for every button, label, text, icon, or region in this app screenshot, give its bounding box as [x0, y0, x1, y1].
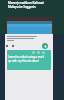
- staticText: Melayu ke Inggeris: [8, 5, 36, 9]
- staticText: Menerjemahkan Kalimat: [8, 1, 44, 5]
- button[interactable]: I want to unlock using a mark up with my…: [7, 50, 51, 70]
- staticText: I want to unlock using a mark up with my…: [8, 55, 46, 63]
- button[interactable]: Play: [42, 43, 48, 49]
